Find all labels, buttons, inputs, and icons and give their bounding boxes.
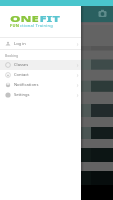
button[interactable]: Classes [0, 60, 81, 70]
staticText: Contact [14, 72, 29, 78]
staticText: ctional Training [20, 23, 53, 28]
staticText: FUN [10, 23, 20, 28]
staticText: Settings [14, 92, 30, 98]
staticText: ONE [10, 13, 39, 25]
staticText: FIT [39, 13, 61, 25]
button[interactable]: Notifications [0, 80, 81, 90]
button[interactable]: Contact [0, 70, 81, 80]
staticText: Notifications [14, 82, 39, 88]
button[interactable]: Log in [0, 39, 81, 49]
button[interactable]: Settings [0, 90, 81, 100]
button[interactable]: Camera [98, 9, 107, 18]
staticText: Log in [14, 41, 26, 47]
staticText: Classes [14, 62, 29, 68]
staticText: Booking [5, 53, 19, 58]
